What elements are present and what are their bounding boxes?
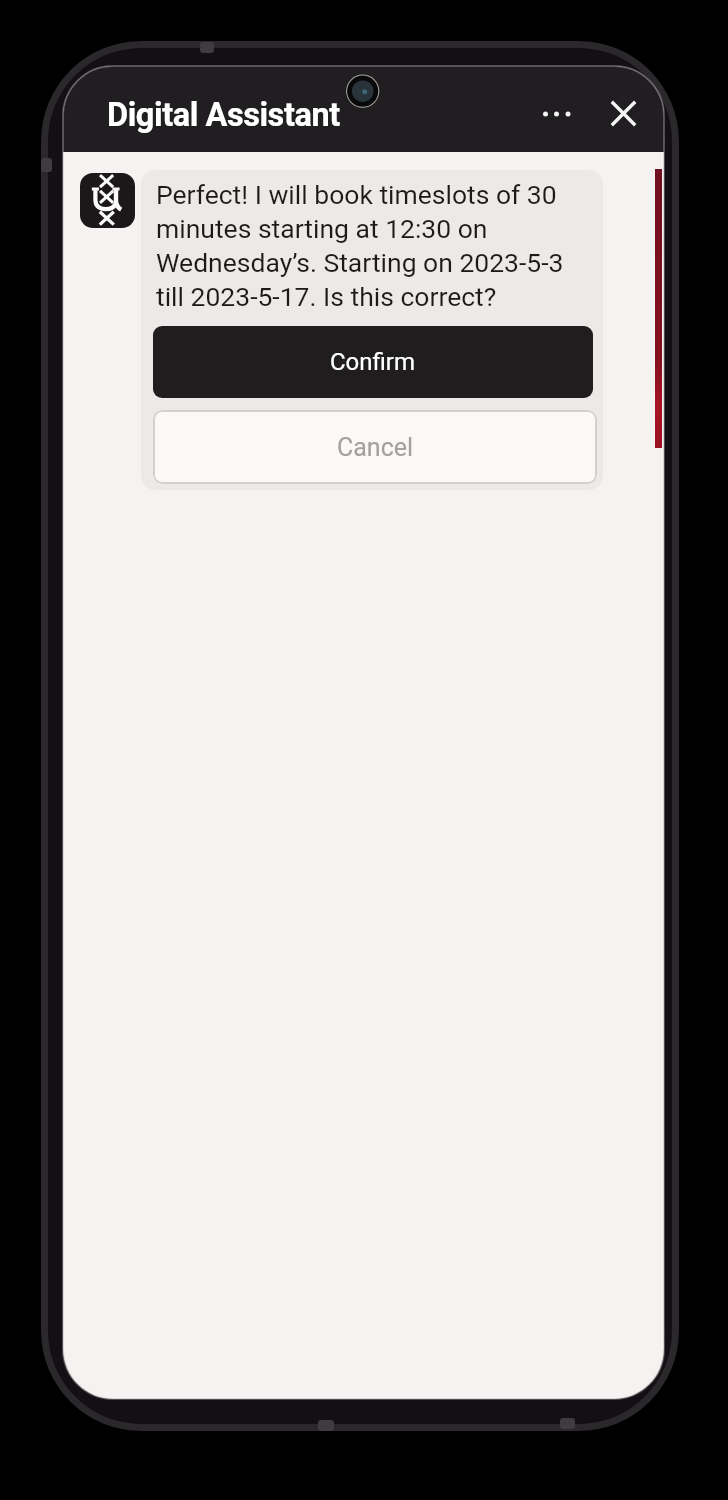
- staticText: Cancel: [337, 433, 414, 462]
- button[interactable]: Cancel: [153, 410, 597, 484]
- button[interactable]: [533, 100, 581, 128]
- staticText: Digital Assistant: [107, 96, 340, 134]
- staticText: Confirm: [330, 348, 416, 376]
- button[interactable]: Confirm: [153, 326, 593, 398]
- staticText: Perfect! I will book timeslots of 30 min…: [156, 179, 564, 312]
- button[interactable]: [607, 97, 640, 130]
